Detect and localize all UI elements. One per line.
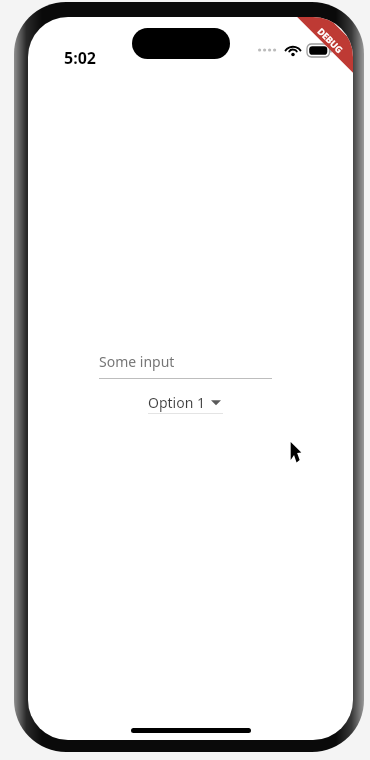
staticText: 5:02 [64, 47, 96, 69]
staticText: Some input [99, 352, 175, 371]
other: Expand dropdown [211, 399, 221, 406]
button[interactable]: Some input [99, 348, 272, 379]
staticText: Option 1 [148, 393, 205, 412]
button[interactable]: Option 1 [148, 391, 223, 414]
staticText: DEBUG [315, 25, 346, 55]
